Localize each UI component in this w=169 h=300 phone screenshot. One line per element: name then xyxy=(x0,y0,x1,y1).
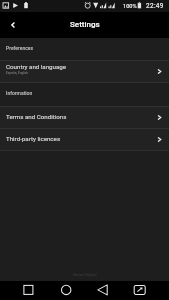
button[interactable]: Screenshot xyxy=(122,281,169,300)
staticText: 100% xyxy=(123,3,137,10)
button[interactable]: Terms and Conditions xyxy=(0,107,169,128)
button[interactable]: Back xyxy=(85,281,122,300)
staticText: Preferences xyxy=(6,45,34,51)
staticText: 22:49 xyxy=(146,2,164,10)
button[interactable]: Back xyxy=(0,12,26,38)
button[interactable]: Third-party licences xyxy=(0,129,169,150)
staticText: Information xyxy=(6,90,33,96)
button[interactable]: Recents xyxy=(0,281,48,300)
staticText: Version 0.04 prod xyxy=(73,273,97,277)
button[interactable]: Home xyxy=(48,281,85,300)
staticText: Third-party licences xyxy=(6,135,61,142)
staticText: España, English xyxy=(6,71,29,75)
staticText: Settings xyxy=(70,20,100,29)
staticText: Country and language xyxy=(6,63,67,70)
staticText: Terms and Conditions xyxy=(6,113,67,120)
button[interactable]: Country and language xyxy=(0,61,169,82)
